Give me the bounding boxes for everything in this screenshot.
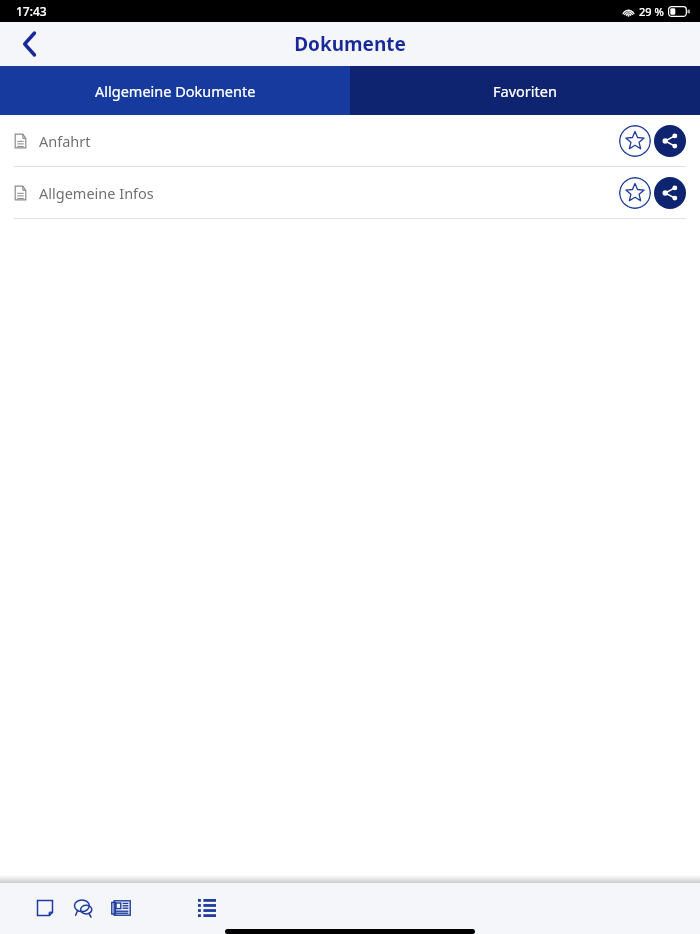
button[interactable]: Dokumente: [192, 893, 222, 923]
button[interactable]: Teilen: [654, 125, 686, 157]
button[interactable]: Favorit: [619, 125, 651, 157]
button[interactable]: Nachrichten: [68, 893, 98, 923]
button[interactable]: Allgemeine Dokumente: [0, 66, 350, 115]
staticText: 17:43: [16, 3, 47, 19]
staticText: 29 %: [639, 4, 664, 19]
button[interactable]: Notizen: [30, 893, 60, 923]
button[interactable]: Back: [8, 22, 52, 66]
staticText: Favoriten: [493, 81, 557, 101]
button[interactable]: Anfahrt: [0, 115, 700, 167]
staticText: Allgemeine Dokumente: [95, 81, 256, 101]
staticText: Allgemeine Infos: [39, 183, 619, 203]
staticText: Anfahrt: [39, 131, 619, 151]
staticText: Dokumente: [294, 31, 406, 57]
button[interactable]: Favoriten: [350, 66, 700, 115]
button[interactable]: Allgemeine Infos: [0, 167, 700, 219]
button[interactable]: Teilen: [654, 177, 686, 209]
button[interactable]: Favorit: [619, 177, 651, 209]
button[interactable]: News: [106, 893, 136, 923]
